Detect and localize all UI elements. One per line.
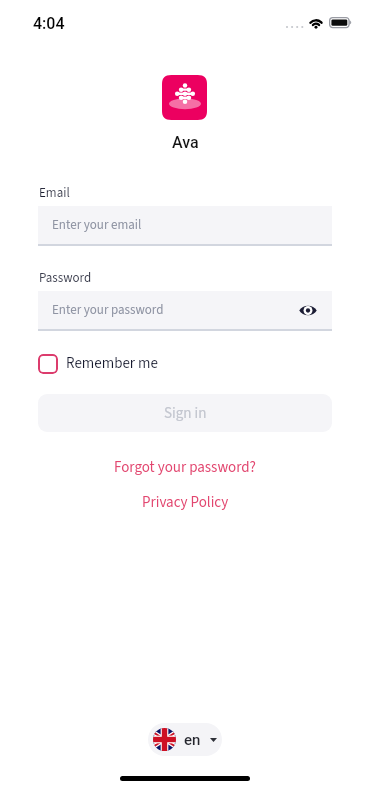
staticText: Ava xyxy=(172,133,199,152)
staticText: Password xyxy=(39,269,92,288)
button[interactable]: Privacy Policy xyxy=(142,492,229,513)
staticText: Enter your password xyxy=(52,301,164,320)
staticText: Privacy Policy xyxy=(142,492,229,513)
staticText: Forgot your password? xyxy=(114,457,256,478)
button[interactable]: Forgot your password? xyxy=(114,457,256,478)
button[interactable]: Sign in xyxy=(38,394,332,432)
button[interactable]: Change language xyxy=(148,723,222,756)
staticText: Enter your email xyxy=(52,216,142,235)
staticText: 4:04 xyxy=(33,14,65,33)
button[interactable]: Remember me xyxy=(38,353,158,374)
button[interactable]: Enter your password xyxy=(38,291,332,331)
staticText: Sign in xyxy=(164,403,207,424)
staticText: en xyxy=(184,731,201,749)
staticText: Remember me xyxy=(66,353,158,374)
button[interactable]: Enter your email xyxy=(38,206,332,246)
button[interactable]: Show password xyxy=(296,298,320,322)
staticText: Email xyxy=(39,184,70,203)
